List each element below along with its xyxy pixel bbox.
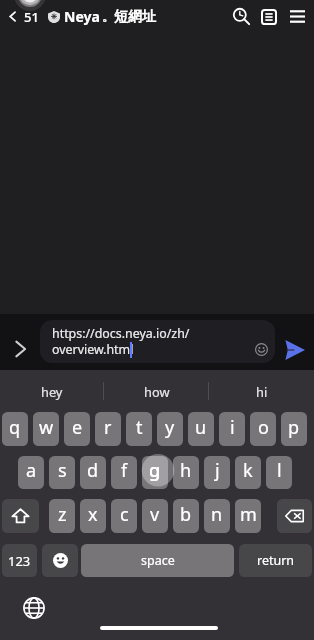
staticText: w <box>39 415 54 440</box>
button[interactable]: Change keyboard <box>22 596 46 620</box>
staticText: https://docs.neya.io/zh/ overview.html <box>52 325 190 358</box>
button[interactable]: b <box>173 499 199 533</box>
button[interactable]: Search history <box>227 0 255 33</box>
button[interactable]: k <box>235 456 261 489</box>
button[interactable]: space <box>81 544 234 577</box>
button[interactable]: Back <box>0 0 24 33</box>
button[interactable]: r <box>95 412 121 446</box>
staticText: hey <box>41 383 63 400</box>
button[interactable]: hey <box>0 370 104 412</box>
staticText: d <box>87 458 99 483</box>
button[interactable]: i <box>219 412 245 446</box>
button[interactable]: Backspace <box>277 499 312 533</box>
staticText: v <box>150 502 160 527</box>
staticText: c <box>120 502 129 527</box>
button[interactable]: w <box>33 412 59 446</box>
button[interactable]: q <box>2 412 28 446</box>
staticText: n <box>211 502 223 527</box>
button[interactable]: h <box>173 456 199 489</box>
staticText: p <box>288 415 300 440</box>
staticText: 。 <box>102 9 114 24</box>
button[interactable]: o <box>250 412 276 446</box>
staticText: l <box>277 458 282 483</box>
staticText: return <box>257 552 295 569</box>
staticText: q <box>9 415 21 440</box>
staticText: hi <box>256 383 268 400</box>
staticText: r <box>104 415 112 440</box>
button[interactable]: x <box>80 499 106 533</box>
button[interactable]: Shift <box>2 499 39 533</box>
button[interactable]: c <box>111 499 137 533</box>
staticText: o <box>258 415 269 440</box>
staticText: a <box>26 458 37 483</box>
staticText: space <box>141 552 175 569</box>
button[interactable]: y <box>157 412 183 446</box>
button[interactable]: m <box>235 499 261 533</box>
button[interactable]: Send <box>278 333 312 367</box>
staticText: e <box>72 415 83 440</box>
button[interactable]: Emoji keyboard <box>42 544 78 577</box>
button[interactable]: g <box>142 456 168 489</box>
button[interactable]: a <box>18 456 44 489</box>
button[interactable]: 123 <box>2 544 37 577</box>
button[interactable]: t <box>126 412 152 446</box>
staticText: g <box>149 458 161 483</box>
button[interactable]: Emoji <box>248 336 274 362</box>
staticText: k <box>243 458 253 483</box>
button[interactable]: d <box>80 456 106 489</box>
staticText: x <box>88 502 98 527</box>
button[interactable]: l <box>266 456 292 489</box>
button[interactable]: Menu <box>283 0 311 33</box>
button[interactable]: j <box>204 456 230 489</box>
button[interactable]: s <box>49 456 75 489</box>
button[interactable]: v <box>142 499 168 533</box>
button[interactable]: https://docs.neya.io/zh/ overview.html <box>40 320 275 363</box>
button[interactable]: f <box>111 456 137 489</box>
button[interactable]: return <box>239 544 312 577</box>
button[interactable]: u <box>188 412 214 446</box>
button[interactable]: n <box>204 499 230 533</box>
staticText: Neya <box>64 7 100 26</box>
button[interactable]: p <box>281 412 307 446</box>
staticText: h <box>180 458 192 483</box>
button[interactable]: z <box>49 499 75 533</box>
staticText: z <box>58 502 67 527</box>
staticText: how <box>144 383 170 400</box>
staticText: 短網址 <box>114 8 156 26</box>
staticText: u <box>195 415 207 440</box>
staticText: m <box>240 502 257 527</box>
staticText: i <box>230 415 235 440</box>
staticText: t <box>136 415 143 440</box>
button[interactable]: hi <box>209 370 314 412</box>
staticText: f <box>121 458 128 483</box>
staticText: j <box>215 458 220 483</box>
staticText: g <box>149 458 161 483</box>
staticText: 51 <box>24 8 39 26</box>
button[interactable]: Reading list <box>255 0 283 33</box>
staticText: s <box>58 458 67 483</box>
button[interactable]: Expand toolbar <box>4 333 36 365</box>
staticText: y <box>165 415 175 440</box>
button[interactable]: how <box>104 370 209 412</box>
button[interactable]: e <box>64 412 90 446</box>
staticText: b <box>180 502 192 527</box>
staticText: 123 <box>8 552 31 570</box>
